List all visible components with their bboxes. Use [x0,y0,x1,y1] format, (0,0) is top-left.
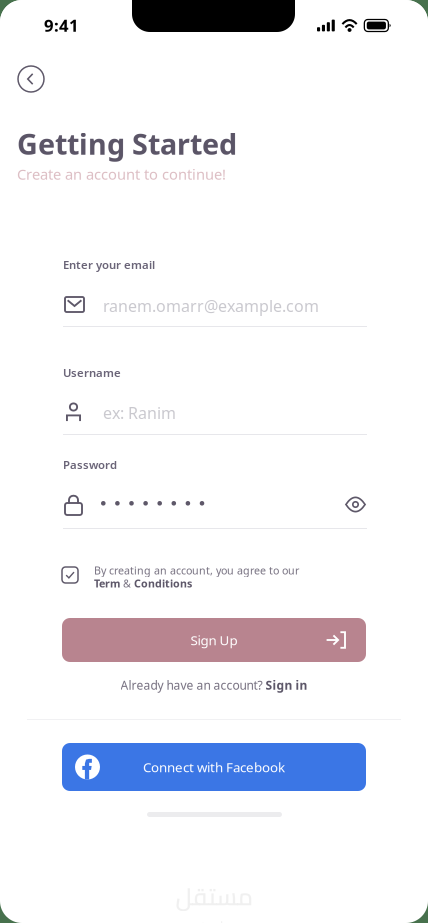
staticText: Username [63,365,121,380]
staticText: Create an account to continue! [17,164,226,184]
staticText: Sign in [265,677,307,693]
staticText: ex: Ranim [103,402,176,424]
staticText: 9:41 [44,14,79,37]
staticText: Conditions [134,576,192,590]
button[interactable]: Show password [345,497,366,512]
button[interactable]: Back [18,66,44,92]
button[interactable]: Agree to terms and conditions [62,567,78,583]
staticText: ranem.omarr@example.com [103,295,319,317]
staticText: Password [63,457,117,472]
staticText: Getting Started [17,124,237,163]
staticText: مستقل [175,874,253,919]
staticText: Already have an account? [120,677,265,693]
button[interactable]: Connect with Facebook [62,743,366,791]
staticText: Sign Up [190,631,237,649]
button[interactable]: Sign Up [62,618,366,662]
staticText: Term [94,576,120,590]
staticText: By creating an account, you agree to our [94,563,299,577]
button[interactable]: Already have an account? [62,676,366,694]
staticText: & [120,576,134,590]
staticText: Connect with Facebook [143,758,285,776]
staticText: Enter your email [63,257,155,272]
